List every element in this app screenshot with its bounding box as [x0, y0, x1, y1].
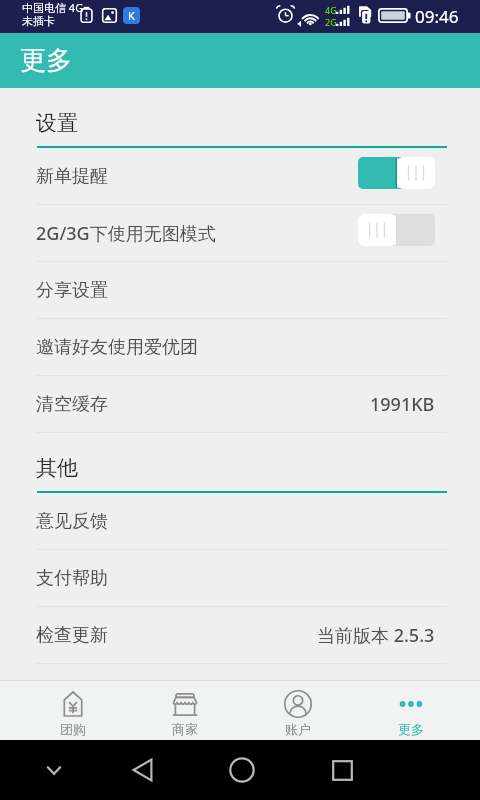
staticText: 清空缓存: [36, 393, 108, 416]
button[interactable]: 意见反馈: [0, 493, 480, 550]
button[interactable]: 账户: [241, 681, 354, 740]
staticText: 商家: [172, 721, 198, 737]
button[interactable]: 检查更新: [0, 607, 480, 664]
staticText: 团购: [60, 721, 86, 737]
button[interactable]: Hide navigation bar: [34, 750, 74, 790]
button[interactable]: 邀请好友使用爱优团: [0, 319, 480, 376]
button[interactable]: Back: [122, 750, 162, 790]
button[interactable]: Recent apps: [322, 750, 362, 790]
staticText: 检查更新: [36, 624, 108, 647]
button[interactable]: On: [358, 157, 435, 189]
staticText: K: [128, 8, 135, 23]
staticText: 支付帮助: [36, 567, 108, 590]
button[interactable]: 更多: [354, 681, 467, 740]
button[interactable]: 团购: [17, 681, 129, 740]
staticText: 未插卡: [22, 14, 55, 28]
staticText: 中国电信 4G: [22, 0, 84, 15]
staticText: 4G: [325, 4, 337, 16]
staticText: 当前版本 2.5.3: [317, 623, 435, 648]
button[interactable]: 清空缓存: [0, 376, 480, 433]
button[interactable]: 商家: [129, 681, 241, 740]
staticText: 2G: [325, 16, 337, 28]
staticText: 1991KB: [370, 392, 435, 417]
staticText: 邀请好友使用爱优团: [36, 336, 198, 359]
staticText: 更多: [398, 721, 424, 737]
button[interactable]: 分享设置: [0, 262, 480, 319]
staticText: 新单提醒: [36, 165, 108, 188]
staticText: 09:46: [415, 5, 459, 28]
staticText: 设置: [36, 110, 78, 136]
button[interactable]: Off: [358, 214, 435, 246]
staticText: 意见反馈: [36, 510, 108, 533]
button[interactable]: 2G/3G下使用无图模式: [0, 205, 480, 262]
button[interactable]: 支付帮助: [0, 550, 480, 607]
button[interactable]: 新单提醒: [0, 148, 480, 205]
button[interactable]: Home: [222, 750, 262, 790]
staticText: 2G/3G下使用无图模式: [36, 221, 216, 246]
staticText: 账户: [285, 721, 311, 737]
staticText: 其他: [36, 455, 78, 481]
staticText: 更多: [20, 44, 72, 77]
staticText: 分享设置: [36, 279, 108, 302]
